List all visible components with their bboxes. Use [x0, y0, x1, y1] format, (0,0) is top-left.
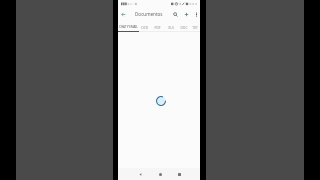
button[interactable]: XLS: [164, 20, 177, 32]
staticText: CHAT Y EMAIL: [119, 25, 138, 29]
button[interactable]: Back: [118, 9, 129, 20]
staticText: Documentos: [135, 11, 163, 17]
staticText: DOC: [180, 25, 188, 29]
staticText: OCR: [141, 25, 148, 29]
button[interactable]: OCR: [138, 20, 151, 32]
button[interactable]: CHAT Y EMAIL: [118, 20, 138, 32]
button[interactable]: TXT: [189, 20, 201, 32]
button[interactable]: DOC: [177, 20, 190, 32]
button[interactable]: Recents: [175, 170, 184, 179]
button[interactable]: Search: [170, 9, 181, 20]
button[interactable]: More options: [191, 9, 202, 20]
button[interactable]: PDF: [151, 20, 164, 32]
button[interactable]: Add: [181, 9, 192, 20]
button[interactable]: Home: [156, 170, 165, 179]
staticText: PDF: [154, 25, 161, 29]
button[interactable]: Back: [136, 170, 145, 179]
staticText: TXT: [192, 25, 198, 29]
staticText: XLS: [168, 25, 174, 29]
